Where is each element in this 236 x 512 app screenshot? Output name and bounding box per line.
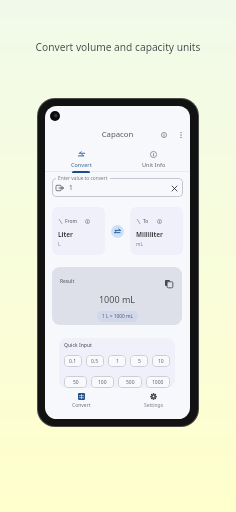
staticText: To	[143, 218, 149, 225]
button[interactable]: Unit Info	[117, 149, 190, 173]
staticText: Unit Info	[142, 161, 166, 168]
staticText: 500	[126, 379, 135, 386]
staticText: Quick Input	[64, 342, 93, 349]
staticText: 10	[158, 358, 164, 365]
staticText: Liter	[58, 230, 73, 239]
staticText: Result	[60, 278, 75, 285]
button[interactable]: Info	[157, 128, 170, 141]
button[interactable]: Settings	[117, 393, 190, 413]
staticText: 50	[73, 379, 79, 386]
staticText: 1	[69, 183, 73, 192]
staticText: 1	[116, 358, 119, 365]
button[interactable]: 0.5	[86, 355, 104, 367]
button[interactable]: More options	[174, 128, 187, 141]
staticText: Capacon	[45, 129, 190, 140]
button[interactable]: Copy result	[163, 278, 174, 289]
staticText: Enter value to convert	[58, 175, 108, 182]
staticText: Convert	[71, 161, 92, 168]
button[interactable]: From	[52, 207, 105, 255]
button[interactable]: 5	[130, 355, 148, 367]
staticText: Convert volume and capacity units	[0, 40, 236, 54]
staticText: L	[58, 241, 61, 248]
staticText: mL	[136, 241, 143, 248]
staticText: 0.1	[69, 358, 77, 365]
staticText: 1000	[152, 379, 164, 386]
button[interactable]: To	[130, 207, 183, 255]
button[interactable]: Clear	[169, 183, 179, 193]
button[interactable]: Convert	[45, 149, 117, 173]
button[interactable]: 100	[91, 376, 114, 388]
staticText: 100	[98, 379, 107, 386]
staticText: From	[65, 218, 77, 225]
button[interactable]: 50	[64, 376, 87, 388]
staticText: 1000 mL	[52, 293, 182, 305]
button[interactable]: 0.1	[64, 355, 82, 367]
button[interactable]: 500	[118, 376, 142, 388]
button[interactable]: 1000	[146, 376, 170, 388]
button[interactable]: 1	[108, 355, 126, 367]
staticText: 0.5	[91, 358, 99, 365]
button[interactable]: 1	[52, 178, 183, 197]
staticText: Milliliter	[136, 230, 163, 239]
staticText: 1 L = 1000 mL	[102, 313, 133, 320]
button[interactable]: Swap units	[111, 225, 124, 238]
button[interactable]: Convert	[45, 393, 117, 413]
staticText: 5	[138, 358, 141, 365]
staticText: Settings	[144, 402, 164, 409]
button[interactable]: 10	[152, 355, 170, 367]
staticText: Convert	[72, 402, 91, 409]
